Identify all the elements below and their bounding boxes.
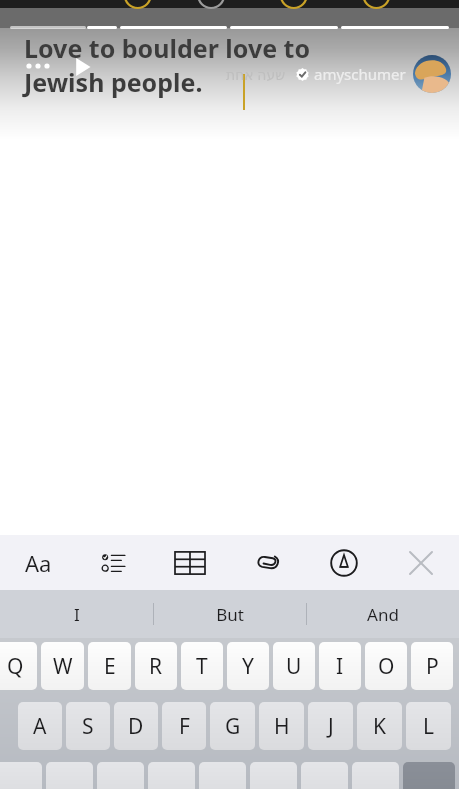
staticText: T (196, 652, 208, 681)
button[interactable] (46, 762, 93, 789)
staticText: P (426, 652, 439, 681)
staticText: D (128, 712, 144, 741)
button[interactable] (250, 762, 297, 789)
button[interactable] (403, 762, 455, 789)
button[interactable]: Close (382, 535, 459, 590)
button[interactable]: Key U (273, 642, 315, 690)
staticText: Aa (25, 548, 52, 578)
button[interactable]: amyschumer (314, 55, 451, 93)
button[interactable] (97, 762, 144, 789)
button[interactable]: I (0, 590, 153, 638)
button[interactable]: And (307, 590, 459, 638)
button[interactable]: Checklist (76, 535, 152, 590)
staticText: H (274, 712, 290, 741)
staticText: W (53, 652, 73, 681)
button[interactable]: Key F (162, 702, 206, 750)
button[interactable] (0, 762, 42, 789)
button[interactable]: Attach (228, 535, 305, 590)
button[interactable]: Play (68, 52, 98, 82)
button[interactable]: Key L (406, 702, 451, 750)
button[interactable] (199, 762, 246, 789)
button[interactable] (301, 762, 348, 789)
button[interactable]: Key A (18, 702, 62, 750)
staticText: U (286, 652, 302, 681)
button[interactable]: Key J (308, 702, 353, 750)
staticText: G (225, 712, 241, 741)
staticText: F (179, 712, 190, 741)
button[interactable]: Table (152, 535, 228, 590)
button[interactable]: Text format (0, 535, 76, 590)
staticText: L (423, 712, 435, 741)
staticText: A (33, 712, 47, 741)
button[interactable]: Key H (259, 702, 304, 750)
button[interactable]: Key R (135, 642, 177, 690)
staticText: O (378, 652, 395, 681)
button[interactable]: Key T (181, 642, 223, 690)
button[interactable]: But (154, 590, 306, 638)
staticText: J (328, 712, 334, 741)
staticText: amyschumer (314, 64, 406, 84)
button[interactable]: Key I (319, 642, 361, 690)
button[interactable]: Key K (357, 702, 402, 750)
staticText: Q (7, 652, 24, 681)
staticText: Y (242, 652, 254, 681)
button[interactable] (352, 762, 399, 789)
staticText: But (216, 603, 244, 626)
button[interactable]: Key P (411, 642, 453, 690)
button[interactable]: Key G (210, 702, 255, 750)
staticText: R (149, 652, 163, 681)
staticText: I (336, 652, 344, 681)
button[interactable]: Key W (41, 642, 84, 690)
staticText: And (367, 603, 399, 626)
staticText: S (82, 712, 94, 741)
button[interactable]: Key O (365, 642, 407, 690)
staticText: I (74, 603, 80, 626)
staticText: K (373, 712, 386, 741)
staticText: שעה אחת (226, 65, 286, 84)
button[interactable]: amyschumer profile photo (413, 55, 451, 93)
button[interactable]: Key Y (227, 642, 269, 690)
button[interactable]: Key S (66, 702, 110, 750)
button[interactable]: Markup (305, 535, 382, 590)
button[interactable]: More options (22, 56, 54, 76)
button[interactable]: Key Q (0, 642, 37, 690)
button[interactable] (148, 762, 195, 789)
staticText: Jewish people. (24, 65, 203, 99)
staticText: Love to boulder love to (24, 31, 311, 65)
button[interactable]: Key E (88, 642, 131, 690)
staticText: E (104, 652, 116, 681)
button[interactable]: Key D (114, 702, 158, 750)
